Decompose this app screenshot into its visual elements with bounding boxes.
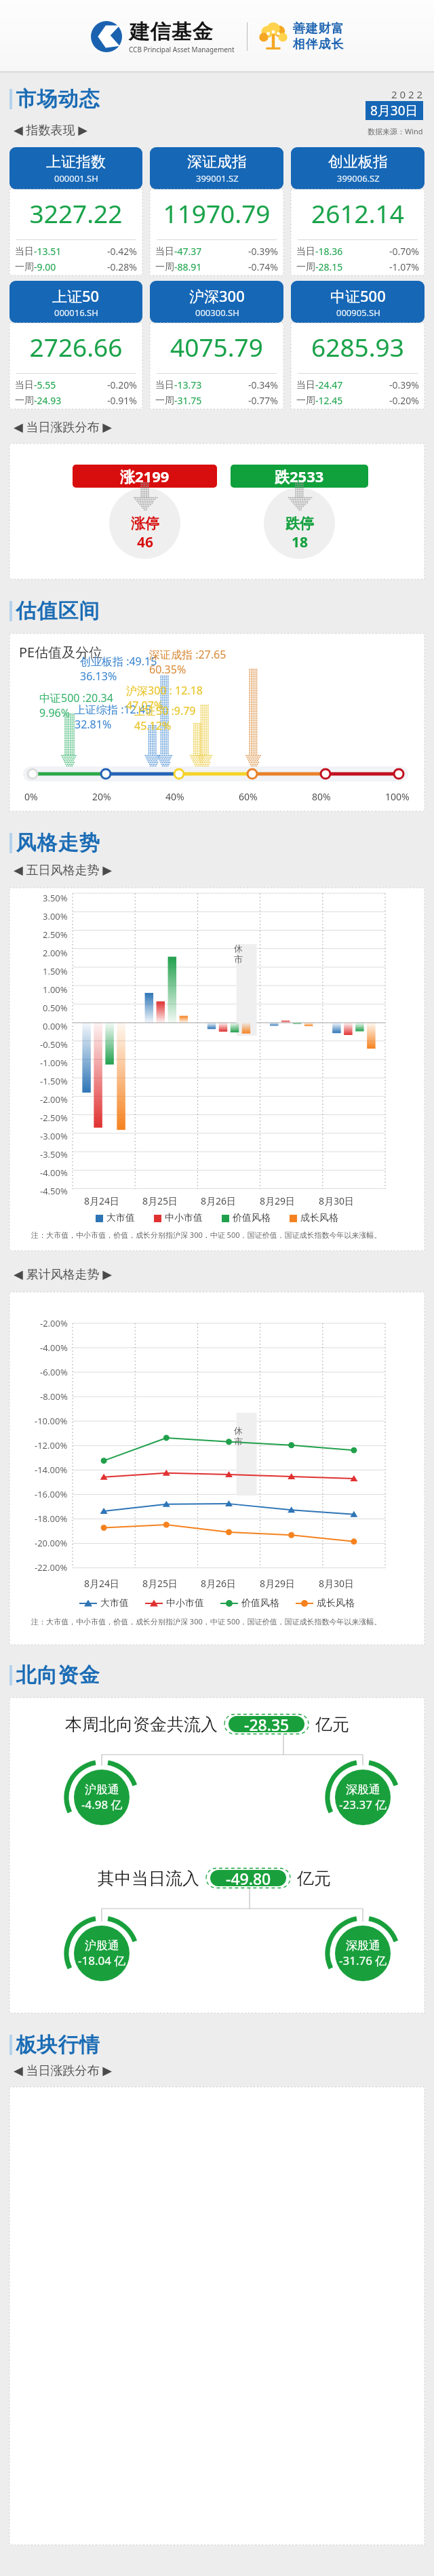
button[interactable]: 沪股通 (66, 1918, 137, 1989)
staticText: 亿元 (315, 1714, 349, 1735)
button[interactable]: 沪股通 (66, 1762, 137, 1833)
button[interactable]: 沪深300 (150, 281, 283, 409)
staticText: -0.39% (248, 245, 278, 258)
staticText: 当日 (15, 246, 34, 258)
staticText: -12.45 (315, 394, 343, 407)
staticText: -31.76 亿 (339, 1953, 387, 1968)
staticText: -28.15 (315, 260, 343, 273)
staticText: -1.50% (40, 1075, 68, 1087)
staticText: -6.00% (40, 1366, 68, 1378)
staticText: -0.42% (107, 245, 137, 258)
staticText: -10.00% (35, 1415, 68, 1427)
button[interactable]: 深股通 (328, 1762, 398, 1833)
staticText: 8月30日 (319, 1194, 355, 1207)
staticText: 深股通 (346, 1938, 380, 1953)
staticText: 2.50% (43, 929, 68, 941)
staticText: 休 (234, 1425, 243, 1436)
staticText: -4.50% (40, 1185, 68, 1197)
staticText: 一周 (296, 395, 315, 407)
staticText: 36.13% (80, 669, 117, 684)
staticText: 20% (92, 790, 111, 803)
button[interactable]: 中证500 (291, 281, 425, 409)
staticText: -4.98 亿 (81, 1797, 123, 1812)
button[interactable]: 涨2199 (73, 465, 217, 559)
staticText: 100% (385, 790, 410, 803)
staticText: ◀ 当日涨跌分布 ▶ (14, 418, 113, 435)
staticText: 40% (165, 790, 184, 803)
staticText: 一周 (15, 395, 34, 407)
staticText: 大市值 (100, 1597, 129, 1609)
staticText: 善建财富 (292, 21, 344, 37)
staticText: 沪深300 (189, 286, 245, 306)
staticText: -0.34% (248, 378, 278, 391)
staticText: 上证指数 (46, 153, 106, 172)
staticText: 上证50 :9.79 (134, 703, 196, 718)
staticText: -3.00% (40, 1130, 68, 1142)
staticText: 3227.22 (15, 196, 137, 230)
staticText: 市 (234, 1436, 243, 1447)
staticText: 8月24日 (84, 1194, 120, 1207)
staticText: 休 (234, 943, 243, 954)
staticText: 深股通 (346, 1782, 380, 1797)
staticText: 创业板指 (328, 153, 388, 172)
staticText: 000905.SH (336, 307, 380, 319)
staticText: -0.39% (389, 378, 419, 391)
staticText: -47.37 (174, 245, 202, 258)
staticText: 中证500 (330, 286, 386, 306)
staticText: 注：大市值，中小市值，价值，成长分别指沪深 300，中证 500，国证价值，国证… (31, 1230, 382, 1240)
staticText: 0.50% (43, 1002, 68, 1014)
staticText: 3.00% (43, 910, 68, 922)
staticText: 涨2199 (120, 466, 170, 486)
staticText: 60% (239, 790, 258, 803)
staticText: -13.51 (34, 245, 62, 258)
staticText: -2.00% (40, 1317, 68, 1329)
staticText: 8月24日 (84, 1577, 120, 1590)
staticText: 32.81% (75, 717, 112, 732)
staticText: CCB Principal Asset Management (129, 45, 235, 54)
staticText: ◀ 五日风格走势 ▶ (14, 861, 113, 878)
staticText: 当日 (296, 379, 315, 391)
staticText: 一周 (155, 261, 174, 273)
staticText: 北向资金 (16, 1662, 100, 1688)
staticText: 市 (234, 954, 243, 964)
button[interactable]: 深证成指 (150, 147, 283, 275)
staticText: -24.93 (34, 394, 62, 407)
staticText: 一周 (15, 261, 34, 273)
staticText: -18.04 亿 (78, 1953, 126, 1968)
staticText: -0.91% (107, 394, 137, 407)
staticText: 板块行情 (16, 2032, 100, 2058)
staticText: -0.74% (248, 260, 278, 273)
staticText: 60.35% (149, 662, 186, 677)
staticText: ◀ 当日涨跌分布 ▶ (14, 2062, 113, 2079)
button[interactable]: 上证50 (9, 281, 142, 409)
button[interactable]: 创业板指 (291, 147, 425, 275)
staticText: -28.35 (244, 1714, 290, 1735)
staticText: 注：大市值，中小市值，价值，成长分别指沪深 300，中证 500，国证价值，国证… (31, 1616, 382, 1626)
staticText: 80% (312, 790, 331, 803)
staticText: -8.00% (40, 1390, 68, 1403)
staticText: 8月25日 (142, 1194, 178, 1207)
staticText: 8月25日 (142, 1577, 178, 1590)
staticText: 成长风格 (300, 1212, 338, 1224)
button[interactable]: 上证指数 (9, 147, 142, 275)
staticText: 创业板指 :49.15 (80, 654, 157, 669)
staticText: -9.00 (34, 260, 56, 273)
staticText: 跌停 (285, 515, 314, 532)
staticText: 6285.93 (296, 330, 419, 364)
staticText: 11970.79 (155, 196, 278, 230)
staticText: 47.07% (126, 698, 163, 713)
staticText: -0.20% (389, 394, 419, 407)
staticText: -22.00% (35, 1561, 68, 1574)
staticText: -12.00% (35, 1439, 68, 1451)
staticText: 沪深300 : 12.18 (126, 683, 203, 698)
staticText: 当日 (296, 246, 315, 258)
staticText: 估值区间 (16, 598, 100, 624)
staticText: -0.70% (389, 245, 419, 258)
button[interactable]: 跌2533 (231, 465, 368, 559)
staticText: 风格走势 (16, 830, 100, 856)
staticText: 45.12% (134, 718, 172, 733)
staticText: -0.28% (107, 260, 137, 273)
staticText: 2.00% (43, 947, 68, 959)
button[interactable]: 深股通 (328, 1918, 398, 1989)
staticText: 8月26日 (201, 1194, 237, 1207)
